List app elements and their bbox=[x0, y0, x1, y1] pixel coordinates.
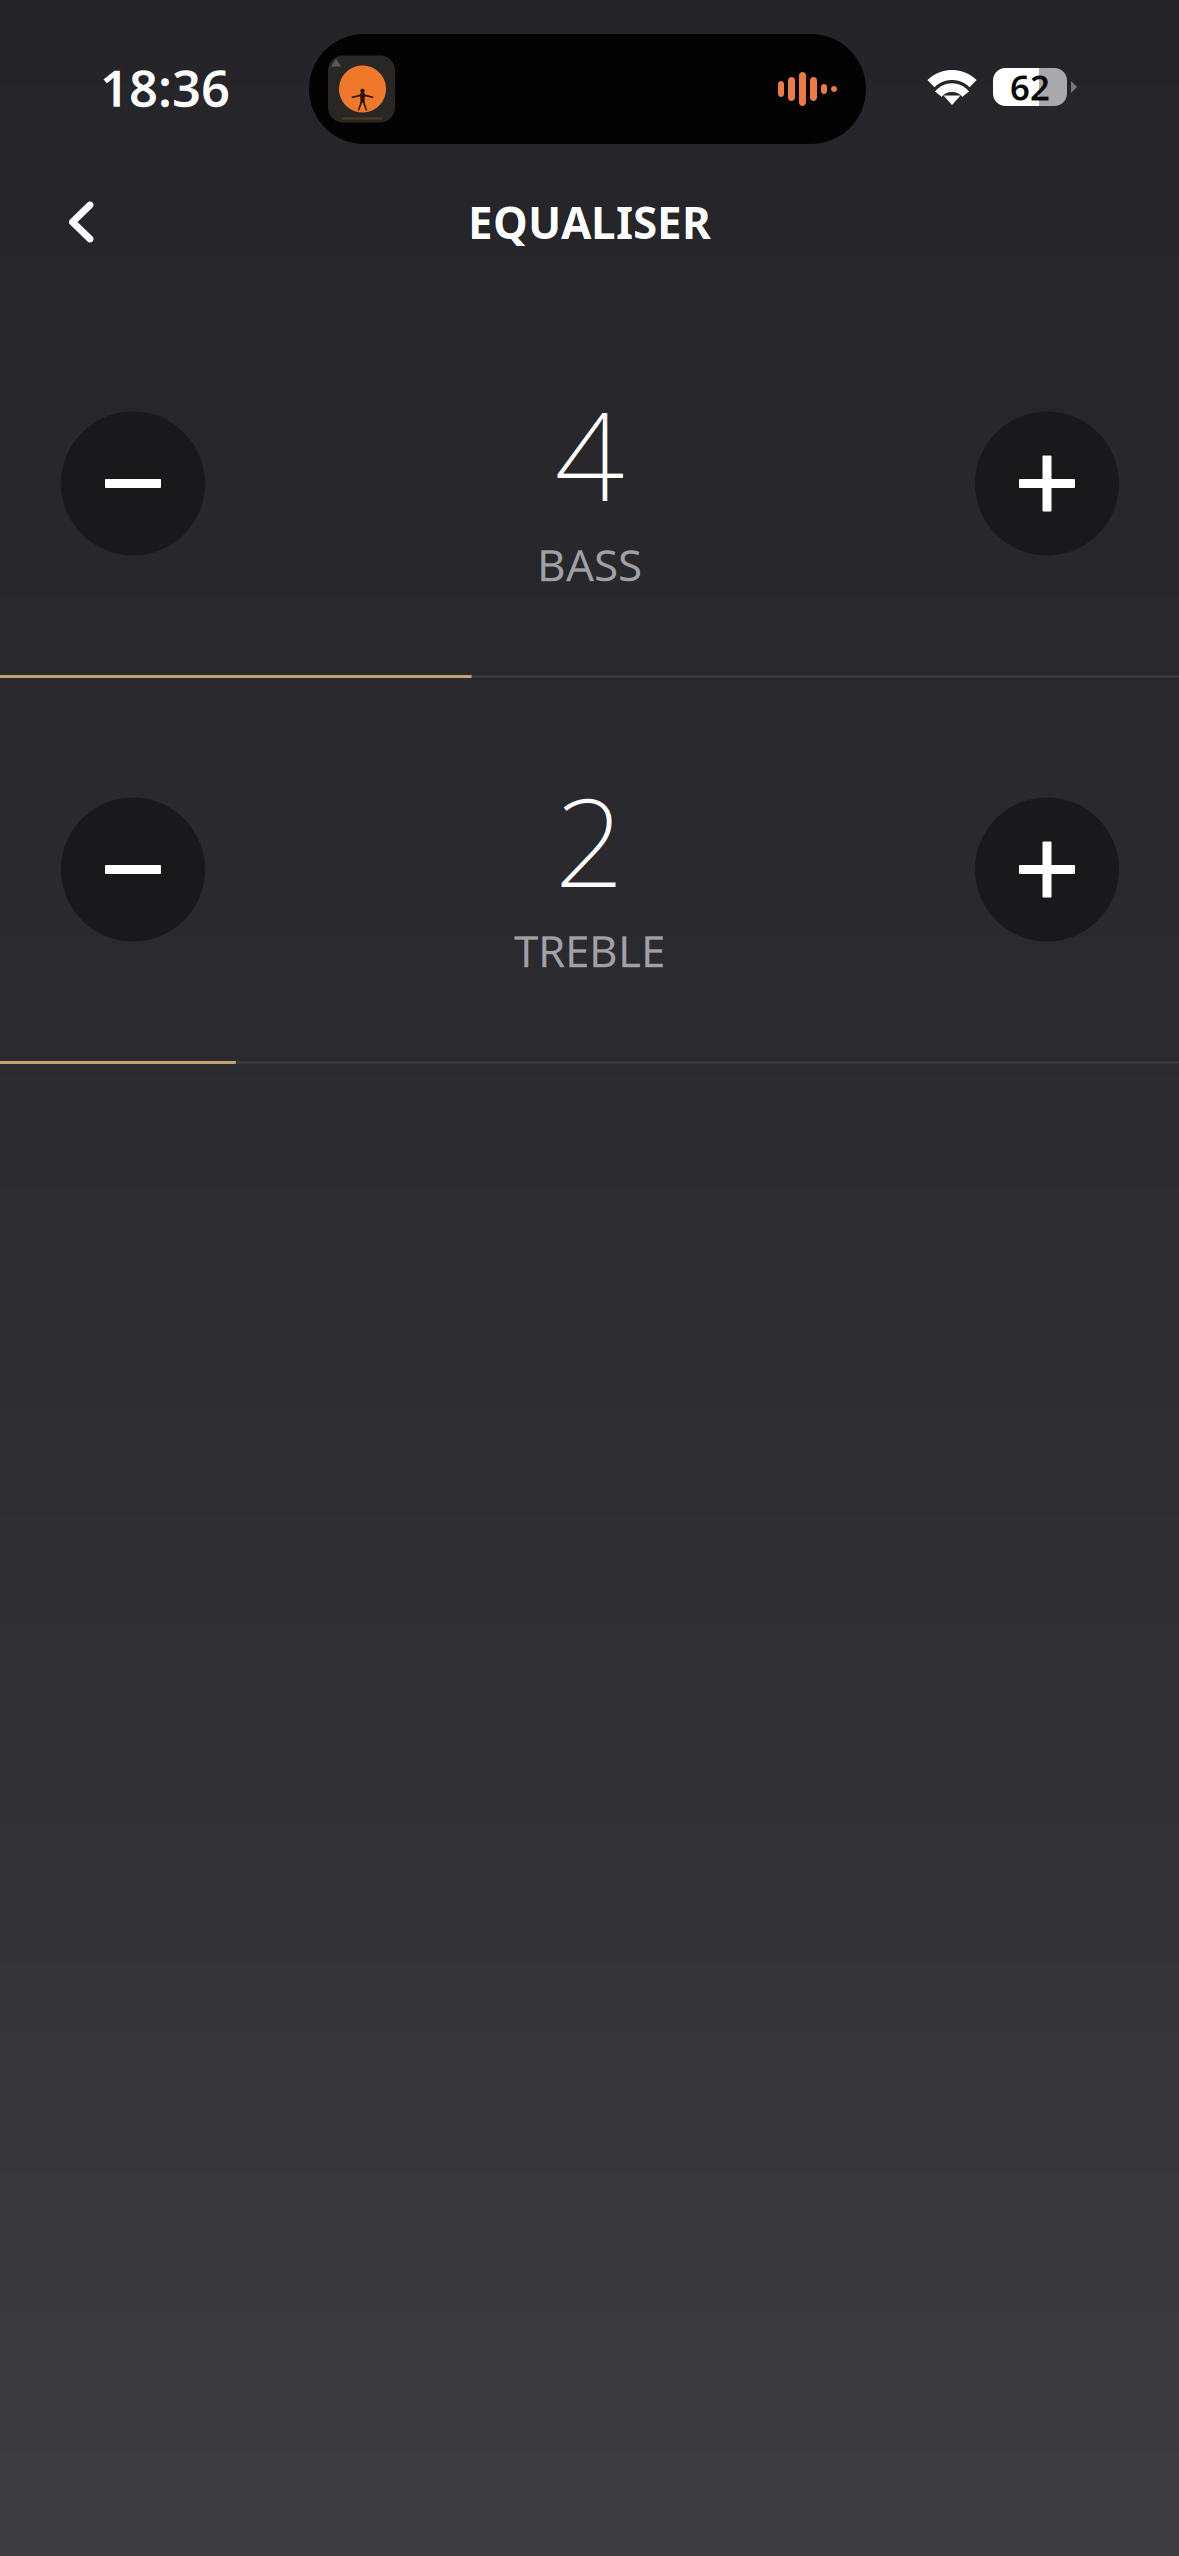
button[interactable]: Increase TREBLE bbox=[975, 797, 1119, 941]
staticText: 2 bbox=[554, 758, 624, 921]
button[interactable]: Increase BASS bbox=[975, 411, 1119, 555]
staticText: TREBLE bbox=[514, 921, 665, 979]
staticText: 18:36 bbox=[100, 53, 230, 121]
staticText: BASS bbox=[537, 535, 642, 593]
staticText: 4 bbox=[554, 372, 624, 535]
button[interactable]: Back bbox=[27, 175, 135, 269]
staticText: 62 bbox=[1010, 64, 1050, 110]
button[interactable]: Decrease BASS bbox=[61, 411, 205, 555]
button[interactable]: Decrease TREBLE bbox=[61, 797, 205, 941]
staticText: EQUALISER bbox=[468, 193, 711, 251]
